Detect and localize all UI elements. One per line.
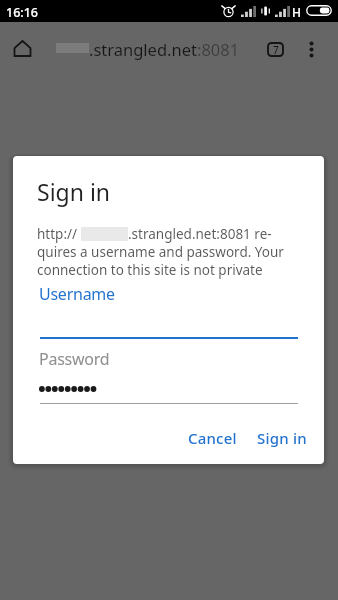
staticText: connection to this site is not private: [37, 261, 263, 279]
button[interactable]: Sign in: [250, 422, 314, 454]
staticText: H: [292, 4, 301, 20]
staticText: quires a username and password. Your: [37, 243, 284, 261]
staticText: Password: [39, 348, 110, 370]
staticText: http://: [37, 225, 78, 243]
staticText: Sign in: [257, 428, 307, 448]
staticText: 16:16: [6, 4, 39, 21]
staticText: .strangled.net:8081 re-: [128, 225, 272, 243]
staticText: .strangled.net: [89, 38, 197, 60]
button[interactable]: Home: [8, 34, 37, 63]
staticText: :8081: [197, 38, 240, 60]
staticText: Sign in: [37, 176, 111, 207]
staticText: 7: [273, 43, 279, 57]
button[interactable]: Tabs, 7 open: [261, 35, 289, 63]
button[interactable]: More options: [297, 35, 325, 63]
staticText: Cancel: [188, 428, 237, 448]
button[interactable]: Cancel: [181, 422, 244, 454]
staticText: Username: [39, 283, 115, 305]
